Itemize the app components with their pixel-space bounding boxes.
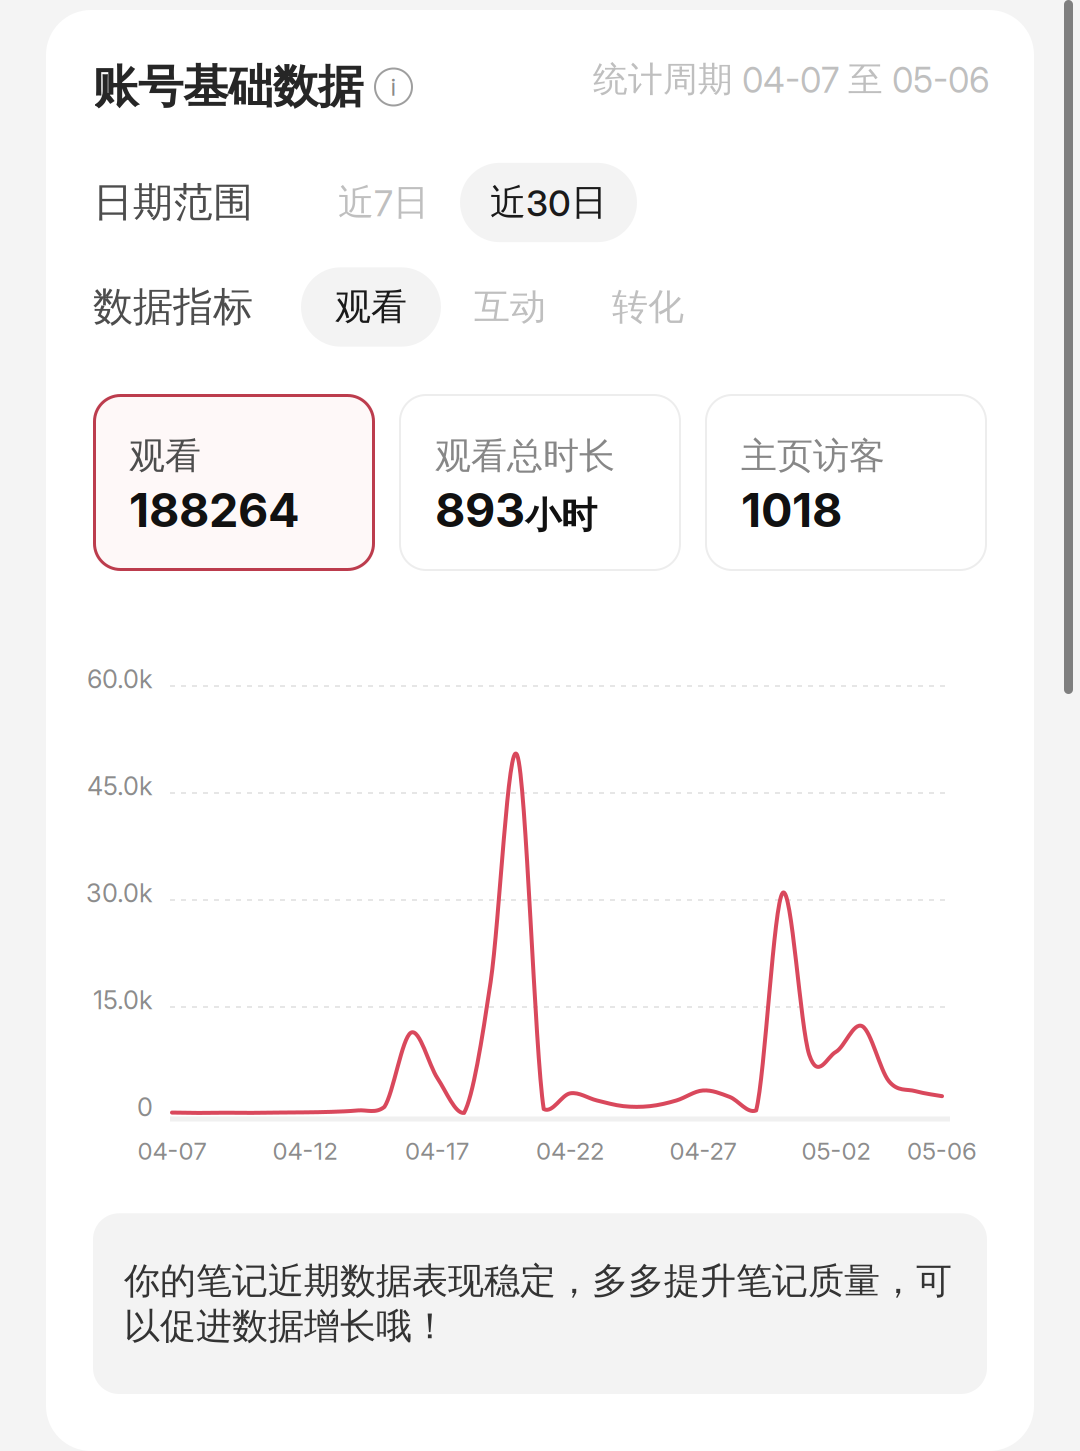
staticText: 05-02 — [801, 1136, 870, 1165]
staticText: 互动 — [474, 284, 546, 330]
button[interactable]: 主页访客 — [705, 394, 987, 571]
button[interactable]: 近7日 — [312, 163, 455, 242]
staticText: 04-27 — [669, 1136, 736, 1165]
staticText: 60.0k — [87, 664, 153, 694]
button[interactable]: 近30日 — [460, 163, 637, 242]
staticText: 主页访客 — [741, 433, 885, 479]
button[interactable]: 转化 — [579, 267, 717, 347]
staticText: 04-07 — [137, 1136, 206, 1165]
staticText: 05-06 — [907, 1136, 977, 1165]
staticText: 观看 — [129, 433, 201, 479]
staticText: 893 — [435, 482, 525, 538]
staticText: 近7日 — [338, 180, 429, 225]
staticText: 0 — [137, 1092, 153, 1122]
staticText: 数据指标 — [93, 282, 253, 332]
staticText: 04-17 — [405, 1136, 469, 1165]
staticText: 30.0k — [86, 878, 153, 908]
button[interactable]: About account data — [375, 68, 412, 105]
staticText: 观看总时长 — [435, 433, 615, 479]
staticText: 1018 — [741, 482, 842, 538]
staticText: 转化 — [612, 284, 684, 330]
staticText: 统计周期 04-07 至 05-06 — [593, 58, 990, 101]
button[interactable]: 观看 — [93, 394, 375, 571]
staticText: 近30日 — [490, 180, 607, 225]
staticText: 日期范围 — [93, 177, 253, 228]
staticText: 你的笔记近期数据表现稳定，多多提升笔记质量，可以促进数据增长哦！ — [124, 1258, 952, 1349]
button[interactable]: 观看 — [301, 267, 441, 347]
button[interactable]: 互动 — [441, 267, 579, 347]
staticText: 15.0k — [93, 985, 153, 1015]
staticText: i — [390, 72, 396, 101]
staticText: 观看 — [335, 284, 407, 330]
staticText: 04-22 — [536, 1136, 604, 1165]
staticText: 04-12 — [272, 1136, 337, 1165]
staticText: 188264 — [129, 482, 300, 538]
staticText: 45.0k — [87, 771, 153, 801]
staticText: 账号基础数据 — [93, 58, 363, 115]
staticText: 小时 — [525, 493, 597, 538]
button[interactable]: 观看总时长 — [399, 394, 681, 571]
